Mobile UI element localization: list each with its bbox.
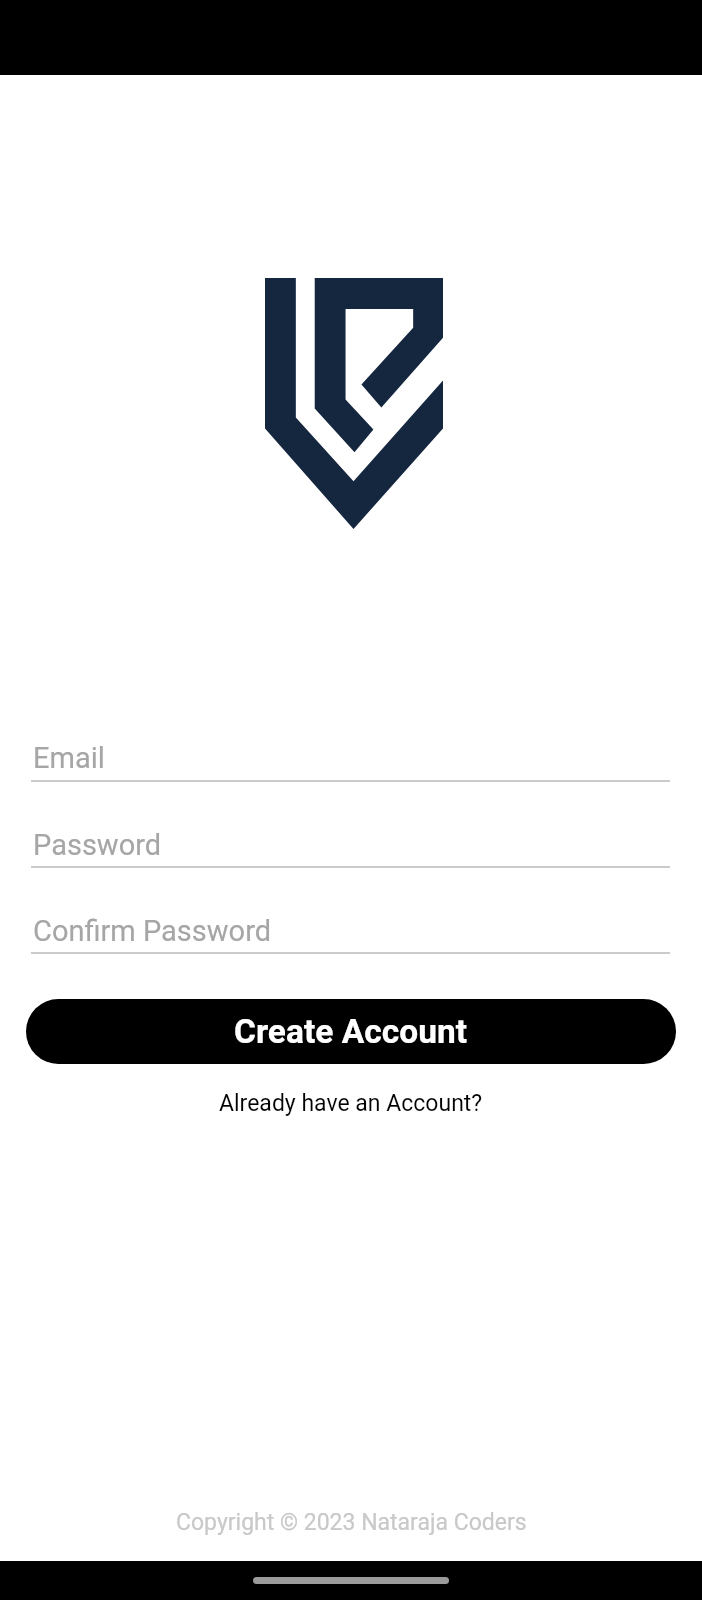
staticText: Create Account [234, 1012, 468, 1051]
staticText: Password [33, 828, 162, 862]
button[interactable]: Create Account [26, 999, 676, 1064]
staticText: Copyright © 2023 Nataraja Coders [176, 1509, 527, 1536]
staticText: Email [33, 741, 105, 775]
staticText: Confirm Password [33, 914, 272, 948]
other: App logo [265, 278, 443, 529]
button[interactable]: Already have an Account? [219, 1090, 483, 1117]
